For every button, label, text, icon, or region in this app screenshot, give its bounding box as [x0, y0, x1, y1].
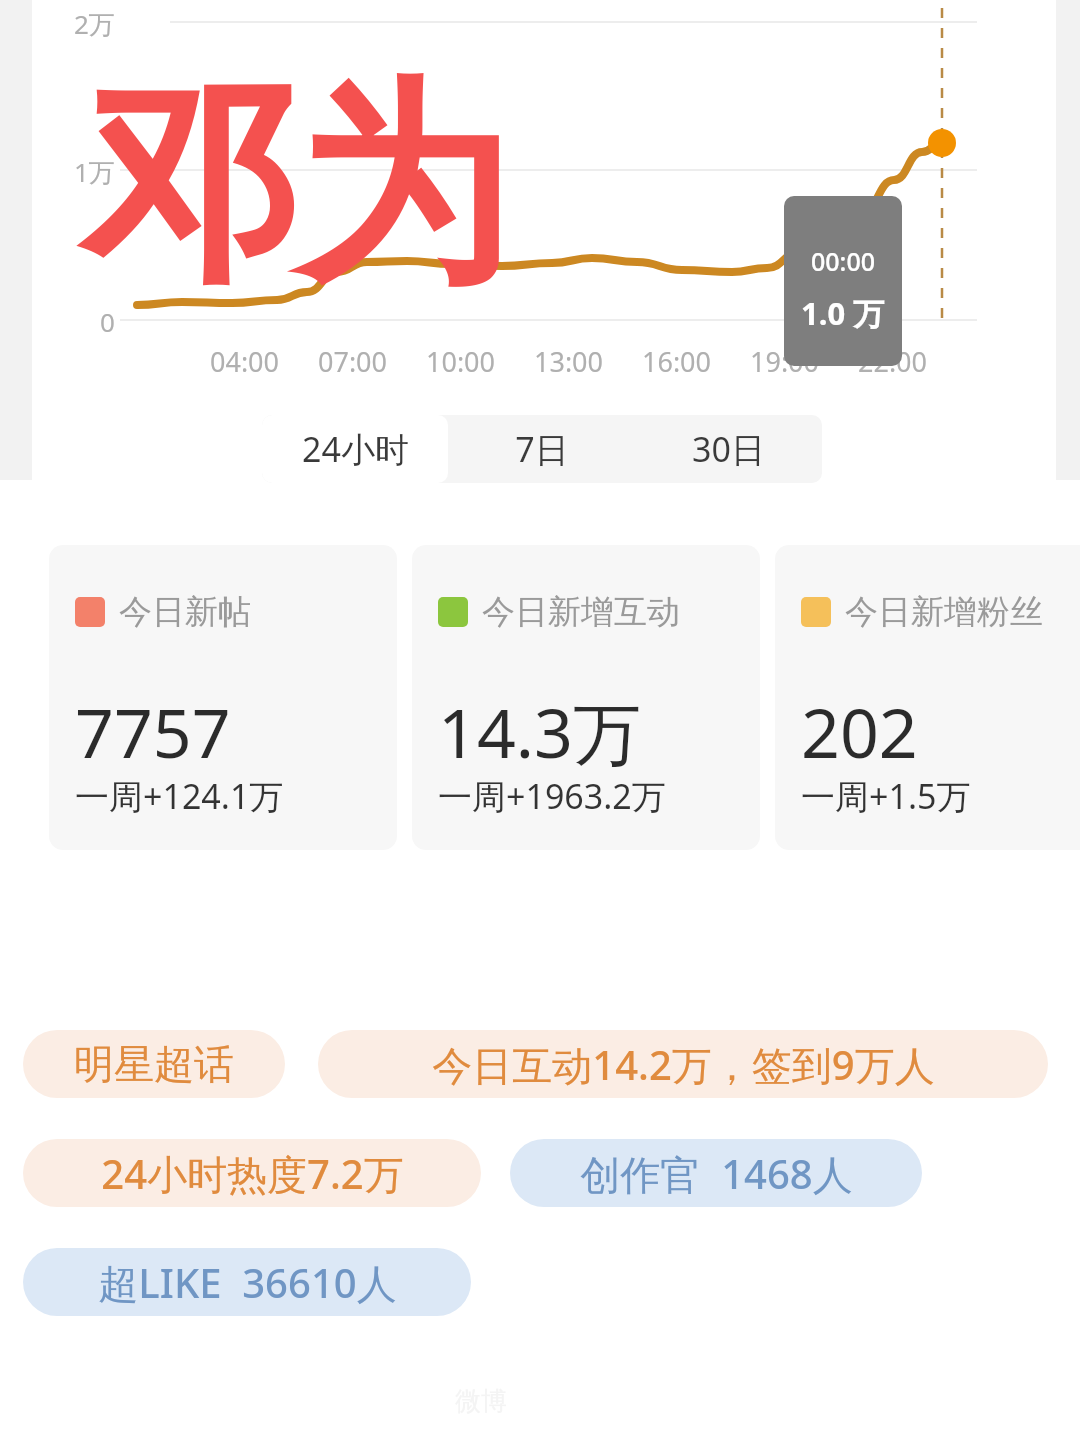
staticText: 16:00: [642, 343, 712, 380]
button[interactable]: 今日互动14.2万，签到9万人: [318, 1030, 1048, 1098]
staticText: 2万: [74, 6, 115, 42]
staticText: 30日: [692, 426, 765, 472]
staticText: 13:00: [534, 343, 604, 380]
button[interactable]: 创作官 1468人: [510, 1139, 922, 1207]
button[interactable]: 24小时热度7.2万: [23, 1139, 481, 1207]
staticText: 一周+1963.2万: [438, 773, 666, 819]
button[interactable]: 今日新增互动: [412, 545, 760, 850]
staticText: 7757: [75, 685, 231, 778]
staticText: 创作官 1468人: [580, 1146, 853, 1201]
button[interactable]: 今日新增粉丝: [775, 545, 1080, 850]
staticText: 22:00: [858, 343, 928, 380]
staticText: 04:00: [210, 343, 280, 380]
button[interactable]: 30日: [635, 415, 822, 483]
staticText: 10:00: [426, 343, 496, 380]
button[interactable]: 明星超话: [23, 1030, 285, 1098]
button[interactable]: 超LIKE 36610人: [23, 1248, 471, 1316]
staticText: 超LIKE 36610人: [98, 1255, 397, 1310]
staticText: 1.0 万: [801, 292, 885, 334]
staticText: 19:00: [750, 343, 820, 380]
staticText: 0: [100, 304, 115, 339]
staticText: 今日新帖: [119, 591, 251, 633]
staticText: 7日: [515, 426, 569, 472]
staticText: 微博: [455, 1385, 507, 1418]
button[interactable]: 7日: [448, 415, 635, 483]
button[interactable]: 24小时: [262, 415, 448, 483]
staticText: 今日新增互动: [482, 591, 680, 633]
staticText: 00:00: [811, 244, 876, 278]
staticText: 07:00: [318, 343, 388, 380]
staticText: 今日互动14.2万，签到9万人: [432, 1037, 935, 1092]
button[interactable]: 今日新帖: [49, 545, 397, 850]
staticText: 一周+124.1万: [75, 773, 284, 819]
staticText: 14.3万: [438, 685, 641, 778]
staticText: 邓为: [80, 52, 510, 323]
staticText: 202: [801, 685, 918, 778]
staticText: 今日新增粉丝: [845, 591, 1043, 633]
staticText: 24小时: [302, 426, 409, 472]
staticText: 明星超话: [74, 1039, 234, 1089]
staticText: 24小时热度7.2万: [101, 1146, 404, 1201]
staticText: 一周+1.5万: [801, 773, 971, 819]
staticText: 1万: [74, 154, 115, 190]
